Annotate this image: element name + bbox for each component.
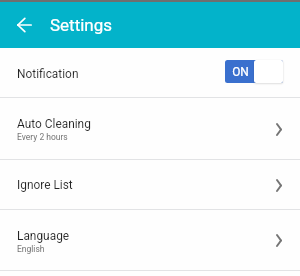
button[interactable]: Notification toggle, on <box>225 60 283 83</box>
button[interactable]: Notification <box>0 48 300 98</box>
button[interactable]: Ignore List <box>0 160 300 210</box>
staticText: ON <box>232 65 249 79</box>
staticText: Settings <box>50 15 113 35</box>
staticText: Ignore List <box>17 178 73 192</box>
staticText: Auto Cleaning <box>17 117 91 131</box>
button[interactable]: Auto Cleaning <box>0 98 300 160</box>
button[interactable]: Language <box>0 210 300 271</box>
staticText: English <box>17 244 45 254</box>
staticText: Every 2 hours <box>17 132 68 142</box>
staticText: Language <box>17 229 70 243</box>
button[interactable]: Back <box>8 9 40 41</box>
staticText: Notification <box>17 67 79 81</box>
